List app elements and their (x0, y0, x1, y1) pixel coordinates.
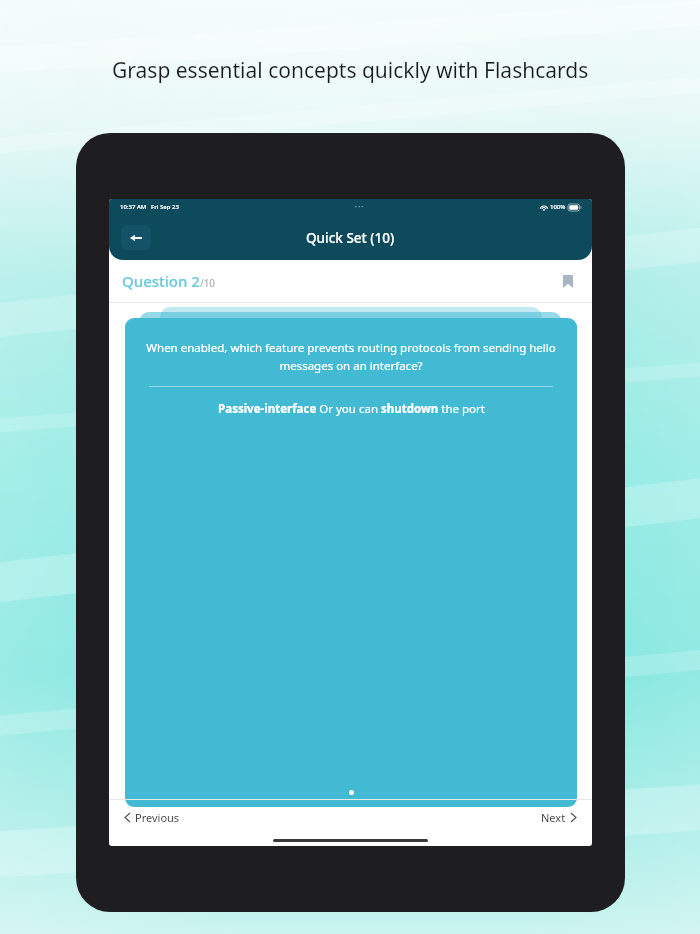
button[interactable]: Previous (123, 806, 182, 829)
button[interactable]: Bookmark (557, 270, 579, 292)
staticText: Previous (135, 810, 180, 825)
staticText: Next (541, 810, 566, 825)
staticText: Passive-interface Or you can shutdown th… (218, 401, 485, 417)
staticText: • • • (355, 204, 364, 211)
staticText: Grasp essential concepts quickly with Fl… (112, 56, 589, 85)
staticText: 100% (550, 203, 566, 211)
button[interactable]: When enabled, which feature prevents rou… (125, 318, 577, 807)
staticText: Quick Set (10) (306, 229, 395, 247)
staticText: 10:37 AM Fri Sep 23 (120, 203, 179, 211)
staticText: When enabled, which feature prevents rou… (143, 340, 559, 373)
button[interactable]: Back (121, 225, 151, 250)
button[interactable]: Next (539, 806, 578, 829)
staticText: Question 2/10 (122, 271, 216, 291)
